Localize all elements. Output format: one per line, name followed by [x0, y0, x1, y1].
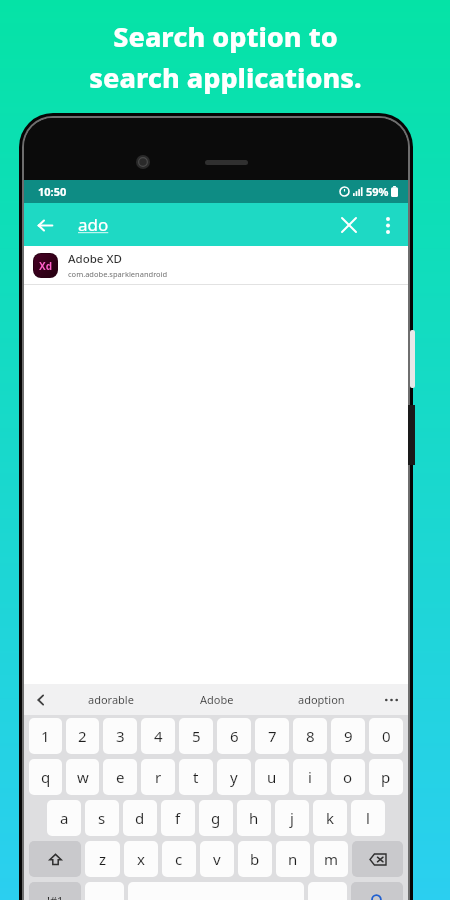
button[interactable]: s: [85, 800, 119, 836]
button[interactable]: Back: [24, 204, 66, 246]
button[interactable]: Clear: [328, 204, 370, 246]
staticText: s: [98, 808, 106, 828]
button[interactable]: k: [313, 800, 347, 836]
staticText: u: [267, 767, 277, 787]
button[interactable]: Xd: [24, 246, 408, 285]
button[interactable]: q: [29, 759, 62, 795]
button[interactable]: adorable: [58, 684, 164, 715]
button[interactable]: w: [66, 759, 99, 795]
button[interactable]: More options: [370, 207, 406, 243]
staticText: 7: [268, 726, 277, 746]
staticText: q: [41, 767, 51, 787]
button[interactable]: a: [47, 800, 81, 836]
staticText: a: [60, 808, 69, 828]
button[interactable]: r: [141, 759, 175, 795]
staticText: p: [381, 767, 391, 787]
button[interactable]: adoption: [269, 684, 374, 715]
button[interactable]: g: [199, 800, 233, 836]
staticText: 8: [306, 726, 315, 746]
staticText: z: [99, 849, 107, 869]
staticText: 1: [41, 726, 50, 746]
staticText: Adobe: [200, 692, 234, 707]
button[interactable]: 6: [217, 718, 251, 754]
button[interactable]: 5: [179, 718, 213, 754]
button[interactable]: u: [255, 759, 289, 795]
button[interactable]: m: [314, 841, 348, 877]
staticText: f: [175, 808, 181, 828]
button[interactable]: 0: [369, 718, 403, 754]
button[interactable]: Settings: [85, 882, 124, 900]
staticText: 5: [192, 726, 201, 746]
staticText: x: [137, 849, 145, 869]
button[interactable]: !#1: [29, 882, 81, 900]
staticText: 9: [344, 726, 353, 746]
staticText: Xd: [39, 259, 53, 273]
staticText: c: [175, 849, 183, 869]
button[interactable]: l: [351, 800, 385, 836]
staticText: adorable: [88, 692, 134, 707]
staticText: Search option to: [113, 18, 338, 55]
staticText: 2: [78, 726, 87, 746]
staticText: search applications.: [89, 59, 362, 96]
button[interactable]: z: [85, 841, 120, 877]
staticText: 6: [230, 726, 239, 746]
button[interactable]: .: [308, 882, 347, 900]
button[interactable]: ado: [66, 203, 328, 246]
button[interactable]: 4: [141, 718, 175, 754]
staticText: j: [290, 808, 294, 828]
staticText: v: [213, 849, 221, 869]
button[interactable]: p: [369, 759, 403, 795]
staticText: 3: [116, 726, 125, 746]
staticText: i: [308, 767, 312, 787]
button[interactable]: 1: [29, 718, 62, 754]
button[interactable]: b: [238, 841, 272, 877]
button[interactable]: i: [293, 759, 327, 795]
button[interactable]: t: [179, 759, 213, 795]
staticText: b: [250, 849, 260, 869]
button[interactable]: h: [237, 800, 271, 836]
button[interactable]: j: [275, 800, 309, 836]
staticText: ado: [78, 213, 109, 236]
staticText: 4: [154, 726, 163, 746]
staticText: n: [288, 849, 298, 869]
button[interactable]: f: [161, 800, 195, 836]
button[interactable]: Shift: [29, 841, 81, 877]
button[interactable]: Search: [351, 882, 403, 900]
button[interactable]: v: [200, 841, 234, 877]
button[interactable]: Backspace: [352, 841, 403, 877]
button[interactable]: o: [331, 759, 365, 795]
button[interactable]: Previous suggestions: [24, 684, 58, 715]
staticText: adoption: [298, 692, 345, 707]
staticText: h: [249, 808, 259, 828]
staticText: w: [77, 767, 89, 787]
staticText: m: [324, 849, 339, 869]
staticText: y: [230, 767, 238, 787]
staticText: l: [366, 808, 370, 828]
button[interactable]: 3: [103, 718, 137, 754]
button[interactable]: y: [217, 759, 251, 795]
button[interactable]: More suggestions: [374, 684, 408, 715]
staticText: 59%: [366, 184, 389, 199]
staticText: k: [326, 808, 335, 828]
staticText: g: [211, 808, 221, 828]
staticText: Adobe XD: [68, 251, 122, 267]
staticText: 10:50: [38, 184, 67, 199]
staticText: d: [135, 808, 145, 828]
staticText: !#1: [47, 893, 64, 900]
button[interactable]: Adobe: [164, 684, 269, 715]
staticText: 0: [382, 726, 391, 746]
button[interactable]: 9: [331, 718, 365, 754]
button[interactable]: e: [103, 759, 137, 795]
button[interactable]: d: [123, 800, 157, 836]
staticText: e: [116, 767, 125, 787]
button[interactable]: 7: [255, 718, 289, 754]
button[interactable]: n: [276, 841, 310, 877]
button[interactable]: c: [162, 841, 196, 877]
button[interactable]: 8: [293, 718, 327, 754]
staticText: r: [155, 767, 162, 787]
button[interactable]: x: [124, 841, 158, 877]
staticText: o: [343, 767, 353, 787]
button[interactable]: 2: [66, 718, 99, 754]
